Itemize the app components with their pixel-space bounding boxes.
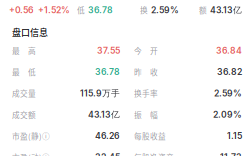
staticText: 115.9万手 (80, 88, 120, 99)
staticText: 43.13亿 (210, 4, 242, 15)
staticText: 昨 收 (134, 66, 158, 77)
button[interactable]: 换手率 (134, 83, 242, 104)
staticText: 2.59% (214, 88, 242, 98)
staticText: 成交额 (12, 109, 36, 120)
button[interactable]: 每股净资产 (134, 146, 242, 156)
button[interactable]: 昨 收 (134, 61, 242, 83)
button[interactable]: 最 高 (12, 40, 120, 61)
staticText: 2.09% (213, 109, 242, 120)
staticText: 每股净资产 (134, 152, 174, 156)
staticText: 46.26 (95, 131, 120, 141)
staticText: +1.52% (38, 5, 70, 15)
staticText: 振 幅 (134, 109, 158, 120)
staticText: +0.56 (9, 5, 34, 15)
button[interactable]: 振 幅 (134, 104, 242, 125)
staticText: 2.59% (151, 5, 179, 15)
staticText: 37.55 (97, 45, 120, 56)
staticText: 36.78 (95, 67, 120, 77)
staticText: 36.84 (216, 45, 242, 56)
button[interactable]: 市盈(动)ⓘ (12, 146, 120, 156)
staticText: 32.45 (95, 152, 120, 156)
staticText: 1.15 (227, 131, 242, 141)
staticText: 43.13亿 (88, 109, 120, 120)
staticText: 11.73 (220, 152, 242, 156)
staticText: 每股收益 (134, 130, 166, 141)
staticText: 市盈(静)ⓘ (12, 130, 50, 141)
button[interactable]: 市盈(静)ⓘ (12, 125, 120, 146)
staticText: 最 高 (12, 45, 36, 56)
button[interactable]: 今 开 (134, 40, 242, 61)
staticText: 成交量 (12, 88, 36, 99)
staticText: 36.82 (217, 67, 242, 77)
staticText: 今 开 (134, 45, 158, 56)
staticText: 市盈(动)ⓘ (12, 152, 50, 156)
button[interactable]: 成交额 (12, 104, 120, 125)
staticText: 低 (77, 4, 85, 15)
staticText: 换 (140, 4, 148, 15)
button[interactable]: 成交量 (12, 83, 120, 104)
staticText: 最 低 (12, 66, 36, 77)
button[interactable]: 最 低 (12, 61, 120, 83)
button[interactable]: 每股收益 (134, 125, 242, 146)
staticText: 36.78 (88, 5, 113, 15)
staticText: 换手率 (134, 88, 158, 99)
staticText: 盘口信息 (12, 25, 48, 38)
staticText: 额 (199, 4, 207, 15)
